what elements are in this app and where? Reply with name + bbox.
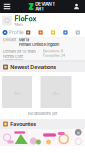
- staticText: FloFox: [14, 14, 36, 23]
- staticText: Profile: [9, 30, 24, 35]
- staticText: Deviant: [3, 37, 16, 42]
- staticText: Female United Kingdom: [19, 42, 59, 47]
- staticText: ART: [35, 6, 44, 12]
- button[interactable]: Account: [70, 0, 82, 13]
- staticText: Maria: [14, 22, 23, 27]
- button[interactable]: Favourite 5: [57, 129, 71, 146]
- staticText: Favourites 24: [43, 54, 65, 58]
- button[interactable]: Favourite 6: [71, 129, 85, 146]
- button[interactable]: Deviation 2: [40, 76, 71, 108]
- staticText: DEVIANT: [35, 1, 55, 7]
- button[interactable]: Favourites: [0, 119, 85, 129]
- button[interactable]: Menu: [1, 0, 13, 13]
- staticText: No deviations yet: [28, 111, 57, 116]
- button[interactable]: Profile: [0, 28, 26, 37]
- button[interactable]: Newest Deviations: [0, 62, 85, 72]
- button[interactable]: Favourite 2: [14, 129, 28, 146]
- button[interactable]: Favourite 1: [0, 129, 14, 146]
- button[interactable]: Favourite 3: [28, 129, 42, 146]
- staticText: Deviant for 10 Years: [3, 49, 36, 54]
- staticText: Needs Core Membership: [3, 54, 23, 63]
- staticText: Maria: [19, 37, 29, 42]
- staticText: Favourites: [10, 121, 36, 127]
- staticText: Newest Deviations: [10, 64, 56, 70]
- button[interactable]: Favourite 4: [42, 129, 57, 146]
- staticText: Deviations 0: [43, 49, 63, 53]
- staticText: ×: [76, 129, 80, 136]
